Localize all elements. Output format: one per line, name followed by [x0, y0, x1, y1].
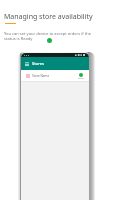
staticText: Store Name [32, 74, 50, 78]
button[interactable]: Open navigation menu [24, 61, 29, 66]
staticText: Ready [78, 77, 85, 80]
button[interactable]: Store Name [21, 70, 89, 81]
staticText: Managing store availability [4, 12, 93, 22]
staticText: Stores [32, 61, 45, 66]
staticText: You can set your device to accept orders… [4, 31, 92, 41]
